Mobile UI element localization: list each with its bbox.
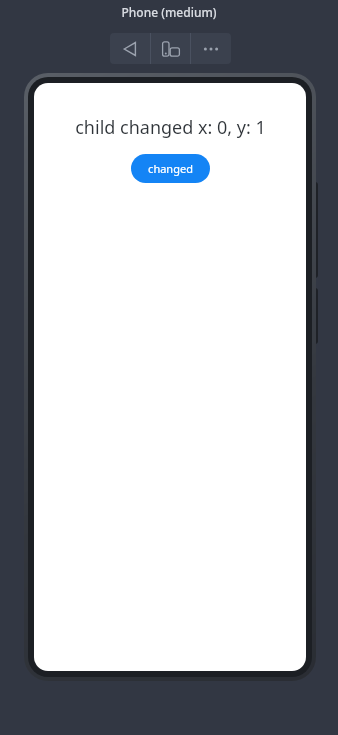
button[interactable]: Volume button [308, 182, 318, 278]
staticText: child changed x: 0, y: 1 [75, 115, 266, 140]
button[interactable]: Run preview [110, 33, 150, 64]
button[interactable]: changed [131, 154, 210, 183]
staticText: changed [148, 161, 193, 176]
staticText: Phone (medium) [121, 4, 217, 20]
button[interactable]: Power button [308, 288, 318, 344]
button[interactable]: Change device orientation [151, 33, 190, 64]
button[interactable]: More options [191, 33, 231, 64]
